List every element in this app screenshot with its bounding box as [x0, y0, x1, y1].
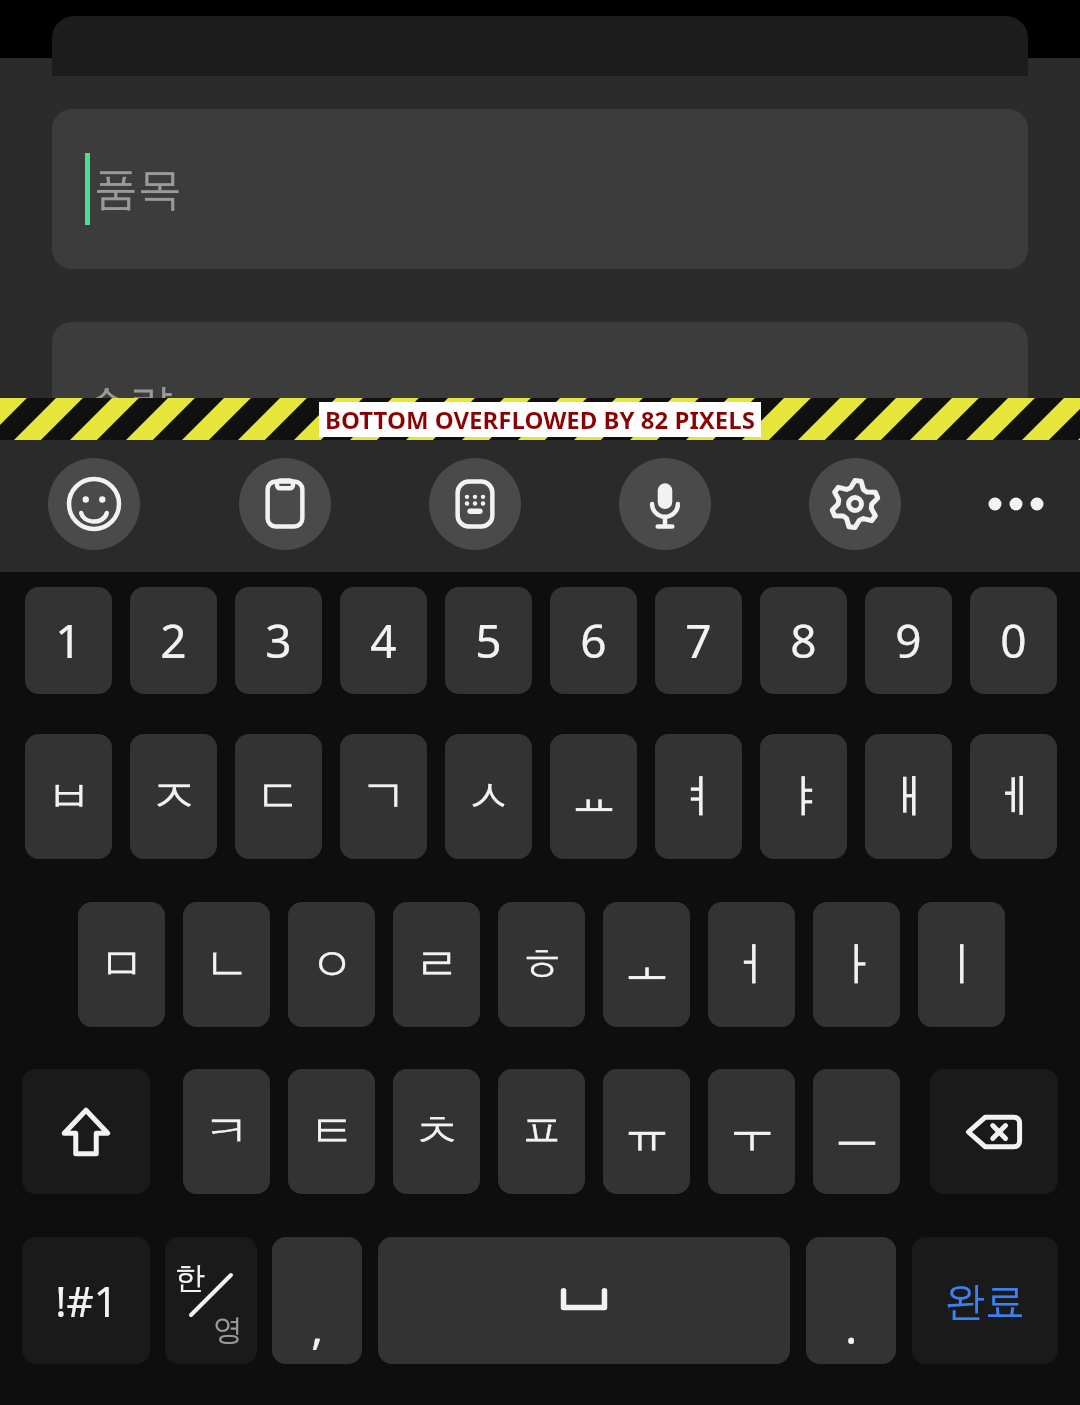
- button[interactable]: ㅕ: [655, 734, 742, 859]
- button[interactable]: ㅌ: [288, 1069, 375, 1194]
- button[interactable]: ㄷ: [235, 734, 322, 859]
- staticText: ㄹ: [414, 936, 460, 994]
- button[interactable]: ㅇ: [288, 902, 375, 1027]
- button[interactable]: ㅏ: [813, 902, 900, 1027]
- button[interactable]: ㅊ: [393, 1069, 480, 1194]
- button[interactable]: 1: [25, 587, 112, 694]
- staticText: ㅜ: [729, 1103, 775, 1161]
- staticText: .: [845, 1295, 858, 1358]
- button[interactable]: Shift: [22, 1069, 150, 1194]
- button[interactable]: Voice input: [619, 458, 711, 550]
- button[interactable]: More options: [970, 458, 1062, 550]
- button[interactable]: ㅐ: [865, 734, 952, 859]
- button[interactable]: ㅓ: [708, 902, 795, 1027]
- staticText: ㄴ: [204, 936, 250, 994]
- button[interactable]: .: [806, 1237, 896, 1364]
- button[interactable]: ㅎ: [498, 902, 585, 1027]
- button[interactable]: ㅈ: [130, 734, 217, 859]
- staticText: 8: [790, 609, 817, 672]
- staticText: 영: [213, 1311, 243, 1349]
- button[interactable]: 완료: [912, 1237, 1058, 1364]
- staticText: ㅅ: [466, 768, 512, 826]
- staticText: ㅐ: [886, 768, 932, 826]
- button[interactable]: ㄱ: [340, 734, 427, 859]
- staticText: ㅓ: [729, 936, 775, 994]
- button[interactable]: 4: [340, 587, 427, 694]
- button[interactable]: 9: [865, 587, 952, 694]
- staticText: ㅇ: [309, 936, 355, 994]
- staticText: ㅌ: [309, 1103, 355, 1161]
- button[interactable]: ㅜ: [708, 1069, 795, 1194]
- button[interactable]: Settings: [809, 458, 901, 550]
- button[interactable]: Clipboard: [239, 458, 331, 550]
- staticText: ㅎ: [519, 936, 565, 994]
- button[interactable]: ㅂ: [25, 734, 112, 859]
- staticText: 5: [475, 609, 502, 672]
- staticText: ㅁ: [99, 936, 145, 994]
- button[interactable]: 3: [235, 587, 322, 694]
- staticText: ㅔ: [991, 768, 1037, 826]
- staticText: ㄷ: [256, 768, 302, 826]
- button[interactable]: 7: [655, 587, 742, 694]
- button[interactable]: 8: [760, 587, 847, 694]
- button[interactable]: Backspace: [930, 1069, 1058, 1194]
- staticText: ㅊ: [414, 1103, 460, 1161]
- staticText: ㅏ: [834, 936, 880, 994]
- staticText: ㅡ: [834, 1103, 880, 1161]
- button[interactable]: ,: [272, 1237, 362, 1364]
- staticText: 2: [160, 609, 187, 672]
- button[interactable]: ㅠ: [603, 1069, 690, 1194]
- button[interactable]: 품목: [52, 109, 1028, 269]
- button[interactable]: ㅋ: [183, 1069, 270, 1194]
- button[interactable]: ㅍ: [498, 1069, 585, 1194]
- button[interactable]: Space: [378, 1237, 790, 1364]
- button[interactable]: ㅁ: [78, 902, 165, 1027]
- staticText: 완료: [945, 1276, 1025, 1326]
- button[interactable]: One-handed keyboard: [429, 458, 521, 550]
- staticText: 4: [370, 609, 397, 672]
- button[interactable]: !#1: [22, 1237, 150, 1364]
- staticText: ㅠ: [624, 1103, 670, 1161]
- button[interactable]: ㄴ: [183, 902, 270, 1027]
- button[interactable]: ㅗ: [603, 902, 690, 1027]
- staticText: 7: [685, 609, 712, 672]
- button[interactable]: 0: [970, 587, 1057, 694]
- button[interactable]: ㅣ: [918, 902, 1005, 1027]
- staticText: !#1: [55, 1272, 118, 1329]
- staticText: ㅛ: [571, 768, 617, 826]
- staticText: ㅣ: [939, 936, 985, 994]
- button[interactable]: ㅡ: [813, 1069, 900, 1194]
- staticText: 0: [1000, 609, 1027, 672]
- button[interactable]: ㅔ: [970, 734, 1057, 859]
- staticText: 수량: [85, 378, 173, 433]
- staticText: 3: [265, 609, 292, 672]
- button[interactable]: 한: [165, 1237, 257, 1364]
- staticText: 9: [895, 609, 922, 672]
- button[interactable]: ㅅ: [445, 734, 532, 859]
- staticText: ㅗ: [624, 936, 670, 994]
- button[interactable]: 6: [550, 587, 637, 694]
- staticText: 한: [175, 1259, 205, 1297]
- staticText: ㅂ: [46, 768, 92, 826]
- staticText: 품목: [94, 162, 182, 217]
- staticText: 1: [55, 609, 82, 672]
- button[interactable]: 수량: [52, 322, 1028, 482]
- button[interactable]: Emoji: [48, 458, 140, 550]
- button[interactable]: 5: [445, 587, 532, 694]
- staticText: BOTTOM OVERFLOWED BY 82 PIXELS: [325, 403, 755, 436]
- staticText: ㅕ: [676, 768, 722, 826]
- staticText: ㅑ: [781, 768, 827, 826]
- button[interactable]: 2: [130, 587, 217, 694]
- staticText: ㅍ: [519, 1103, 565, 1161]
- button[interactable]: ㅑ: [760, 734, 847, 859]
- staticText: ,: [311, 1295, 324, 1358]
- button[interactable]: ㄹ: [393, 902, 480, 1027]
- staticText: ㅋ: [204, 1103, 250, 1161]
- staticText: 6: [580, 609, 607, 672]
- staticText: ㄱ: [361, 768, 407, 826]
- staticText: ㅈ: [151, 768, 197, 826]
- button[interactable]: ㅛ: [550, 734, 637, 859]
